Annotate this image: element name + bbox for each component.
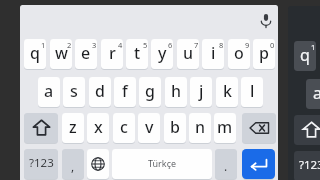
staticText: ?123: [29, 155, 54, 171]
staticText: d: [95, 80, 105, 102]
button[interactable]: b: [164, 113, 186, 143]
button[interactable]: q: [24, 39, 46, 69]
staticText: .: [224, 158, 228, 174]
staticText: m: [217, 116, 233, 138]
button[interactable]: Shift: [294, 115, 320, 145]
staticText: 3: [92, 40, 97, 50]
staticText: n: [195, 116, 206, 138]
staticText: s: [70, 80, 78, 102]
button[interactable]: h: [165, 77, 187, 107]
button[interactable]: y: [151, 39, 173, 69]
staticText: b: [170, 116, 180, 138]
other: Backspace: [249, 120, 270, 136]
staticText: l: [250, 80, 255, 102]
button[interactable]: v: [138, 113, 160, 143]
staticText: w: [55, 42, 68, 64]
button[interactable]: Change language: [87, 149, 109, 179]
staticText: 2: [67, 40, 72, 50]
staticText: ,: [71, 158, 75, 174]
staticText: o: [234, 42, 244, 64]
staticText: 1: [311, 42, 316, 52]
button[interactable]: p: [253, 39, 275, 69]
button[interactable]: a: [38, 77, 60, 107]
staticText: e: [81, 42, 91, 64]
staticText: 7: [194, 40, 199, 50]
staticText: v: [145, 116, 154, 138]
button[interactable]: d: [89, 77, 111, 107]
staticText: ?123: [299, 157, 320, 173]
button[interactable]: o: [228, 39, 250, 69]
staticText: c: [120, 116, 128, 138]
staticText: a: [44, 80, 54, 102]
staticText: q: [30, 42, 40, 64]
staticText: a: [313, 82, 320, 104]
button[interactable]: q: [294, 41, 316, 71]
staticText: 8: [219, 40, 224, 50]
staticText: f: [122, 80, 128, 102]
button[interactable]: i: [202, 39, 224, 69]
button[interactable]: Voice input: [257, 11, 275, 29]
staticText: 5: [143, 40, 148, 50]
button[interactable]: f: [114, 77, 136, 107]
button[interactable]: j: [190, 77, 212, 107]
staticText: u: [183, 42, 194, 64]
button[interactable]: Shift: [24, 113, 58, 143]
staticText: i: [211, 42, 216, 64]
staticText: r: [109, 42, 116, 64]
button[interactable]: l: [241, 77, 263, 107]
staticText: x: [94, 116, 103, 138]
staticText: k: [223, 80, 232, 102]
button[interactable]: Türkçe: [112, 149, 212, 179]
button[interactable]: n: [189, 113, 211, 143]
staticText: Türkçe: [148, 157, 177, 169]
button[interactable]: g: [139, 77, 161, 107]
button[interactable]: m: [214, 113, 236, 143]
other: Shift: [32, 119, 51, 137]
button[interactable]: ?123: [24, 149, 58, 179]
button[interactable]: Enter: [242, 149, 275, 179]
staticText: y: [158, 42, 167, 64]
staticText: 0: [270, 40, 275, 50]
staticText: 6: [168, 40, 173, 50]
staticText: h: [171, 80, 182, 102]
staticText: t: [134, 42, 141, 64]
staticText: j: [199, 80, 204, 102]
staticText: p: [259, 42, 269, 64]
button[interactable]: u: [177, 39, 199, 69]
button[interactable]: t: [126, 39, 148, 69]
button[interactable]: w: [50, 39, 72, 69]
staticText: z: [69, 116, 77, 138]
staticText: 1: [41, 40, 46, 50]
other: Enter: [249, 157, 268, 172]
button[interactable]: c: [113, 113, 135, 143]
button[interactable]: ,: [62, 149, 84, 179]
button[interactable]: k: [216, 77, 238, 107]
button[interactable]: e: [75, 39, 97, 69]
staticText: 9: [245, 40, 250, 50]
button[interactable]: r: [101, 39, 123, 69]
button[interactable]: Backspace: [242, 113, 276, 143]
button[interactable]: x: [87, 113, 109, 143]
staticText: g: [145, 80, 155, 102]
button[interactable]: z: [62, 113, 84, 143]
button[interactable]: ?123: [294, 151, 320, 180]
staticText: q: [300, 44, 310, 66]
button[interactable]: s: [63, 77, 85, 107]
button[interactable]: a: [306, 79, 320, 109]
other: Change language: [91, 157, 105, 171]
staticText: 4: [118, 40, 123, 50]
button[interactable]: .: [215, 149, 237, 179]
